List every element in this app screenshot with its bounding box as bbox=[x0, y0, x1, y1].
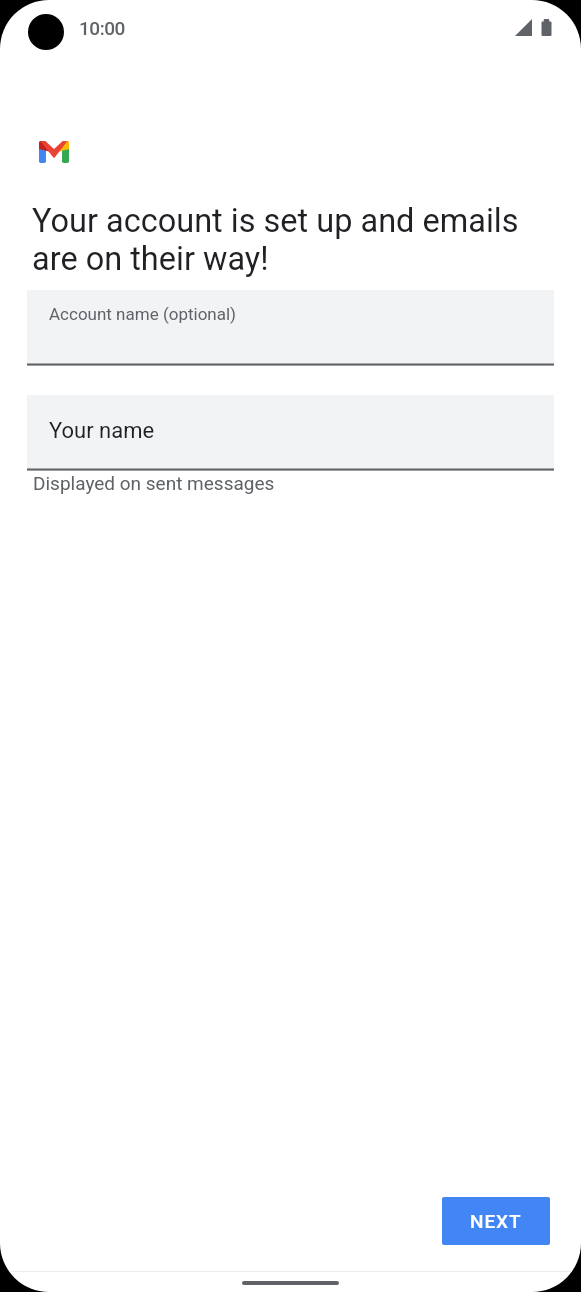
button[interactable]: NEXT bbox=[442, 1197, 550, 1245]
staticText: Your account is set up and emails are on… bbox=[32, 202, 532, 278]
staticText: NEXT bbox=[470, 1210, 522, 1232]
other: Signal strength and battery level bbox=[515, 19, 553, 36]
button[interactable]: Your name bbox=[27, 395, 554, 471]
other: Home gesture bar bbox=[242, 1281, 339, 1285]
staticText: 10:00 bbox=[79, 17, 125, 39]
staticText: Account name (optional) bbox=[49, 304, 237, 324]
staticText: Your name bbox=[49, 418, 155, 444]
button[interactable]: Account name (optional) bbox=[27, 290, 554, 366]
other: Gmail bbox=[39, 141, 69, 163]
staticText: Displayed on sent messages bbox=[33, 472, 275, 494]
